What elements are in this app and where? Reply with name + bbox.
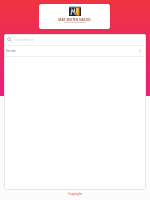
button[interactable]: MAT MOTIN VASOO [39, 4, 110, 29]
staticText: Search here [15, 37, 34, 42]
staticText: MAT MOTIN VASOO [58, 17, 91, 21]
button[interactable]: Search [4, 34, 146, 45]
staticText: Service [6, 49, 16, 53]
staticText: Copyright [68, 192, 82, 196]
staticText: SERVICE PROVIDERS [64, 21, 86, 24]
other: Open service [138, 49, 142, 53]
other: Search [7, 37, 12, 42]
button[interactable]: Service [4, 46, 146, 56]
